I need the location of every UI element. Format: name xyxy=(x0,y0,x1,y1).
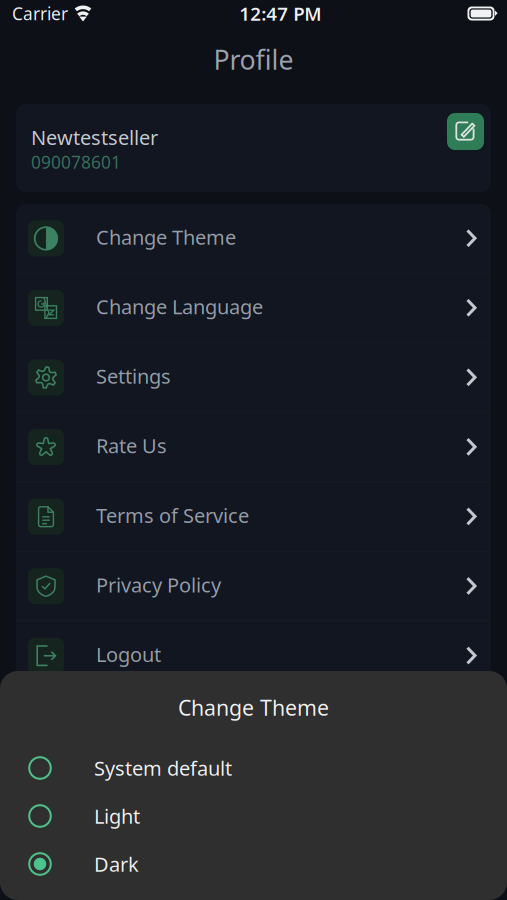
button[interactable]: Logout xyxy=(16,621,491,690)
button[interactable]: Privacy Policy xyxy=(16,552,491,621)
staticText: Light xyxy=(94,803,140,829)
staticText: Privacy Policy xyxy=(96,571,221,598)
button[interactable]: Change Theme xyxy=(16,204,491,273)
staticText: System default xyxy=(94,755,232,781)
staticText: 090078601 xyxy=(31,151,121,174)
staticText: Profile xyxy=(213,42,293,77)
button[interactable]: Rate Us xyxy=(16,413,491,481)
button[interactable]: Light xyxy=(0,792,507,840)
button[interactable]: Terms of Service xyxy=(16,482,491,551)
button[interactable]: Settings xyxy=(16,343,491,412)
button[interactable]: Change Language xyxy=(16,274,491,342)
button[interactable]: Dark xyxy=(0,840,507,888)
staticText: Carrier xyxy=(12,2,68,25)
button[interactable]: System default xyxy=(0,744,507,792)
staticText: 12:47 PM xyxy=(239,1,321,26)
staticText: Logout xyxy=(96,641,161,667)
staticText: Dark xyxy=(94,851,139,877)
staticText: Change Theme xyxy=(178,693,329,722)
button[interactable]: Edit profile xyxy=(447,113,484,150)
staticText: Terms of Service xyxy=(96,502,249,528)
staticText: Settings xyxy=(96,363,171,389)
staticText: Rate Us xyxy=(96,432,167,459)
staticText: Change Theme xyxy=(96,224,236,250)
staticText: Change Language xyxy=(96,293,263,320)
staticText: Newtestseller xyxy=(31,124,158,151)
